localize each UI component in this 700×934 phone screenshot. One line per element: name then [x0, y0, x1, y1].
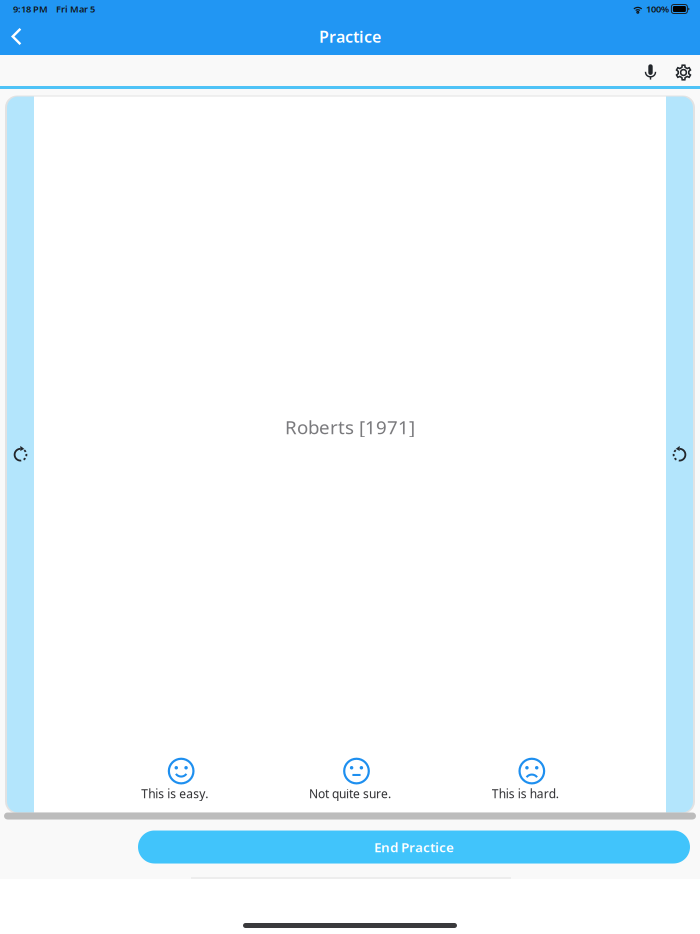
staticText: Practice — [319, 26, 381, 47]
button[interactable]: Speak — [634, 55, 667, 86]
staticText: 100% — [646, 3, 669, 15]
button[interactable]: End Practice — [138, 830, 690, 863]
staticText: 9:18 PM — [13, 3, 48, 15]
button[interactable]: Undo — [666, 96, 693, 812]
staticText: Roberts [1971] — [285, 415, 415, 439]
button[interactable]: This is hard. — [438, 758, 613, 801]
staticText: This is easy. — [141, 786, 208, 801]
staticText: Not quite sure. — [309, 786, 391, 801]
staticText: This is hard. — [492, 786, 559, 801]
button[interactable]: This is easy. — [87, 758, 262, 801]
button[interactable]: Not quite sure. — [262, 758, 438, 801]
button[interactable]: Settings — [667, 55, 700, 86]
staticText: End Practice — [374, 838, 454, 856]
staticText: Fri Mar 5 — [56, 3, 95, 15]
button[interactable]: Redo — [7, 96, 34, 812]
button[interactable]: Back — [0, 18, 33, 55]
